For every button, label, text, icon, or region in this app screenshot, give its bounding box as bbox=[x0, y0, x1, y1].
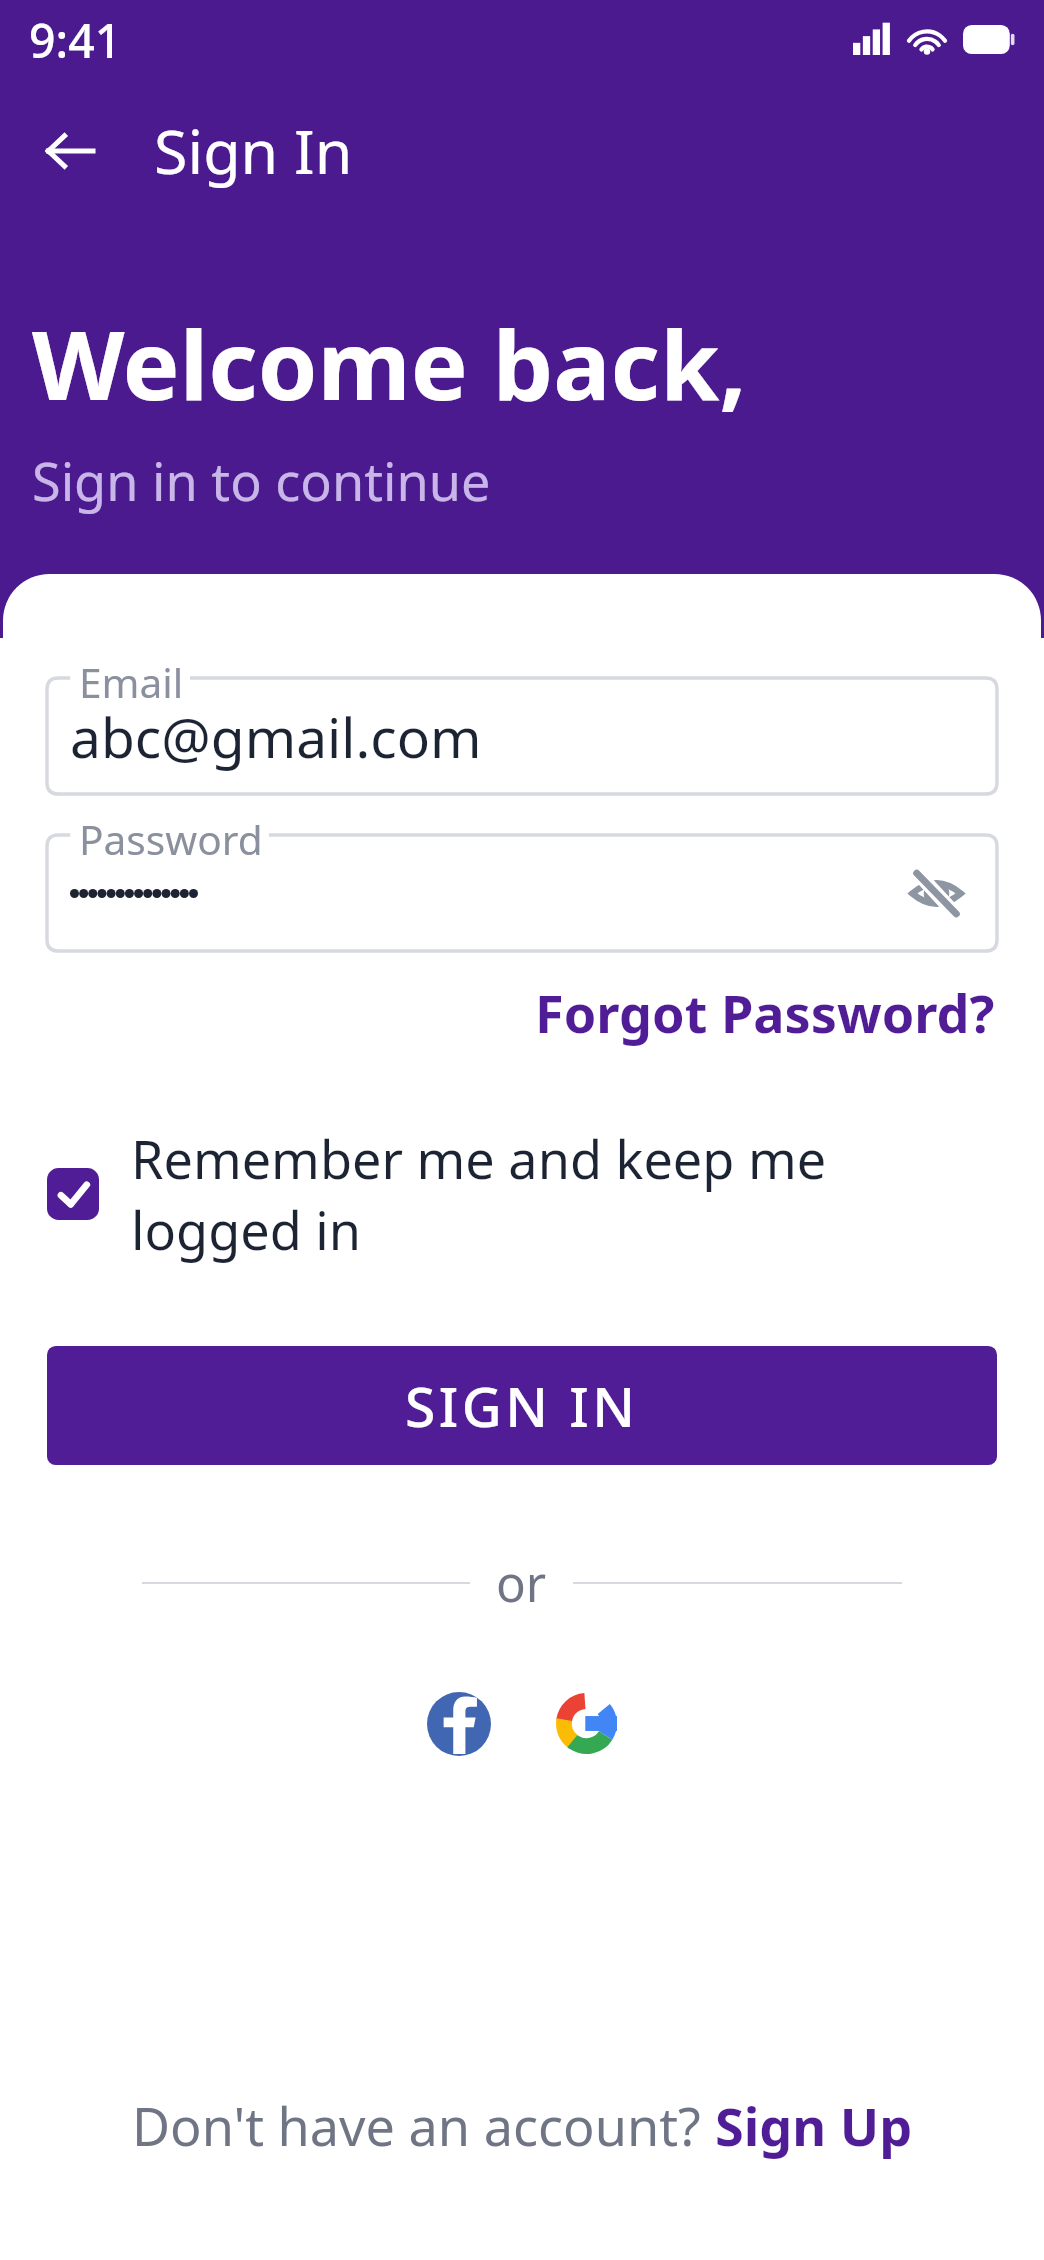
staticText: or bbox=[496, 1549, 547, 1616]
button[interactable]: Sign in with Facebook bbox=[415, 1680, 502, 1767]
button[interactable]: Show password bbox=[899, 856, 974, 931]
button[interactable]: Remember me and keep me logged in bbox=[47, 1123, 997, 1265]
button[interactable]: Back bbox=[26, 107, 113, 194]
staticText: 9:41 bbox=[29, 8, 122, 71]
button[interactable]: SIGN IN bbox=[47, 1346, 997, 1465]
button[interactable]: Sign in with Google bbox=[543, 1680, 630, 1767]
staticText: Welcome back, bbox=[32, 298, 747, 428]
button[interactable]: Sign Up bbox=[715, 2090, 913, 2161]
staticText: abc@gmail.com bbox=[70, 699, 482, 774]
staticText: Email bbox=[79, 655, 184, 710]
staticText: SIGN IN bbox=[405, 1368, 639, 1443]
staticText: Sign in to continue bbox=[32, 445, 491, 516]
staticText: Password bbox=[79, 812, 263, 867]
staticText: Sign In bbox=[154, 109, 353, 192]
staticText: Forgot Password? bbox=[535, 977, 995, 1048]
staticText: Sign Up bbox=[715, 2090, 913, 2161]
button[interactable]: Forgot Password? bbox=[535, 977, 995, 1048]
staticText: Remember me and keep me logged in bbox=[131, 1123, 997, 1265]
staticText: Don't have an account? bbox=[132, 2090, 715, 2161]
